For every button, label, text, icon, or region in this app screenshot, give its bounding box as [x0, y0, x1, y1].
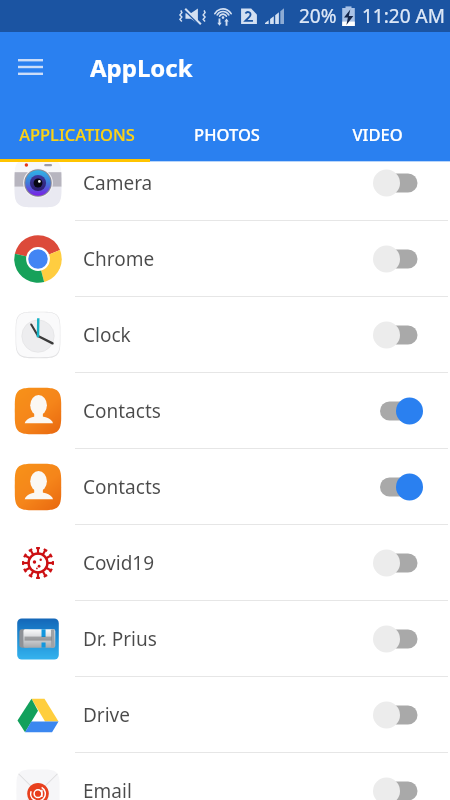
staticText: 11:20 AM [362, 3, 445, 29]
staticText: 20% [299, 3, 337, 29]
staticText: APPLICATIONS [19, 123, 135, 145]
button[interactable]: Camera lock switch [367, 163, 425, 203]
staticText: Clock [83, 322, 131, 348]
button[interactable]: Contacts [0, 449, 450, 525]
button[interactable]: Chrome [0, 221, 450, 297]
staticText: Covid19 [83, 550, 155, 576]
staticText: Camera [83, 170, 153, 196]
button[interactable]: Email lock switch [367, 771, 425, 800]
staticText: Chrome [83, 246, 155, 272]
button[interactable]: Drive [0, 677, 450, 753]
staticText: Contacts [83, 398, 161, 424]
button[interactable]: Drive lock switch [367, 695, 425, 735]
staticText: PHOTOS [194, 123, 260, 145]
staticText: Contacts [83, 474, 161, 500]
staticText: Drive [83, 702, 130, 728]
button[interactable]: Email [0, 753, 450, 800]
staticText: Dr. Prius [83, 626, 157, 652]
button[interactable]: Dr. Prius lock switch [367, 619, 425, 659]
button[interactable]: Clock lock switch [367, 315, 425, 355]
button[interactable]: APPLICATIONS [0, 110, 150, 159]
button[interactable]: Camera [0, 159, 450, 221]
button[interactable]: Dr. Prius [0, 601, 450, 677]
button[interactable]: PHOTOS [150, 110, 300, 159]
button[interactable]: Contacts lock switch [367, 467, 425, 507]
button[interactable]: VIDEO [300, 110, 450, 159]
staticText: Email [83, 778, 132, 800]
button[interactable]: Contacts [0, 373, 450, 449]
button[interactable]: Clock [0, 297, 450, 373]
button[interactable]: Covid19 [0, 525, 450, 601]
button[interactable]: Covid19 lock switch [367, 543, 425, 583]
staticText: VIDEO [352, 123, 403, 145]
staticText: AppLock [90, 51, 193, 84]
button[interactable]: Chrome lock switch [367, 239, 425, 279]
button[interactable]: Open navigation menu [8, 49, 52, 93]
button[interactable]: Contacts lock switch [367, 391, 425, 431]
